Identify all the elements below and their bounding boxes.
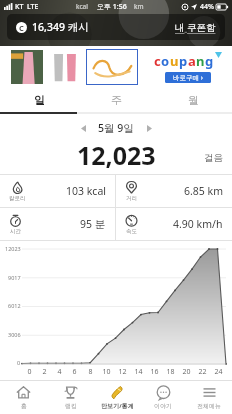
staticText: 9017 bbox=[8, 274, 21, 281]
staticText: 2 bbox=[42, 367, 47, 377]
button[interactable]: 일 bbox=[0, 88, 78, 112]
staticText: C bbox=[19, 23, 24, 33]
staticText: 14 bbox=[134, 367, 143, 377]
staticText: 내 쿠폰함 bbox=[175, 21, 216, 34]
staticText: 22 bbox=[198, 367, 207, 377]
button[interactable]: 시간 bbox=[0, 208, 115, 240]
staticText: 전체메뉴 bbox=[197, 402, 221, 410]
button[interactable]: C bbox=[7, 14, 225, 40]
button[interactable]: 칼로리 bbox=[0, 175, 115, 207]
button[interactable]: 월 bbox=[155, 88, 232, 112]
staticText: 홈 bbox=[21, 402, 27, 410]
staticText: 주 bbox=[111, 93, 122, 107]
staticText: 95 분 bbox=[80, 217, 106, 231]
staticText: 12 bbox=[118, 367, 127, 377]
staticText: 랭킹 bbox=[65, 402, 77, 410]
staticText: 거리 bbox=[126, 195, 137, 202]
staticText: 만보기/통계 bbox=[101, 402, 134, 410]
staticText: 18 bbox=[166, 367, 175, 377]
staticText: 6 bbox=[72, 367, 77, 377]
staticText: c bbox=[154, 52, 161, 70]
staticText: kcal bbox=[76, 2, 88, 11]
staticText: 20 bbox=[182, 367, 191, 377]
staticText: n bbox=[196, 52, 205, 70]
staticText: 12023 bbox=[5, 245, 21, 252]
staticText: 103 kcal bbox=[66, 184, 106, 198]
staticText: 속도 bbox=[126, 228, 137, 235]
staticText: 걸음 bbox=[204, 152, 223, 164]
button[interactable]: 랭킹 bbox=[47, 381, 94, 414]
staticText: LTE bbox=[27, 2, 39, 12]
staticText: 4.90 km/h bbox=[173, 217, 223, 231]
staticText: 5월 9일 bbox=[98, 121, 134, 135]
staticText: 칼로리 bbox=[9, 195, 26, 202]
staticText: 4 bbox=[57, 367, 62, 377]
staticText: 24 bbox=[214, 367, 223, 377]
staticText: 오후 1:56 bbox=[97, 2, 127, 12]
staticText: u bbox=[170, 52, 179, 70]
staticText: 3006 bbox=[8, 331, 21, 338]
button[interactable]: 만보기/통계 bbox=[94, 381, 140, 414]
button[interactable]: Next day bbox=[142, 121, 156, 135]
staticText: 6012 bbox=[8, 302, 21, 309]
staticText: 44% bbox=[200, 2, 214, 12]
button[interactable]: c bbox=[0, 46, 232, 88]
staticText: 0 bbox=[17, 359, 21, 366]
staticText: km bbox=[134, 2, 144, 11]
staticText: 일 bbox=[34, 93, 45, 107]
button[interactable]: 거리 bbox=[116, 175, 232, 207]
staticText: 16,349 캐시 bbox=[32, 20, 89, 34]
button[interactable]: 이야기 bbox=[140, 381, 186, 414]
staticText: 10 bbox=[102, 367, 111, 377]
staticText: 6.85 km bbox=[184, 184, 223, 198]
staticText: 월 bbox=[188, 93, 199, 107]
button[interactable]: 속도 bbox=[116, 208, 232, 240]
staticText: p bbox=[179, 52, 188, 70]
button[interactable]: 전체메뉴 bbox=[186, 381, 232, 414]
button[interactable]: 주 bbox=[78, 88, 155, 112]
staticText: KT bbox=[15, 2, 24, 12]
staticText: 16 bbox=[150, 367, 159, 377]
staticText: 12,023 bbox=[77, 138, 156, 170]
staticText: a bbox=[188, 52, 196, 70]
button[interactable]: 내 쿠폰함 bbox=[175, 21, 216, 34]
button[interactable]: 홈 bbox=[0, 381, 47, 414]
staticText: 0 bbox=[27, 367, 32, 377]
staticText: o bbox=[161, 52, 170, 70]
button[interactable]: Previous day bbox=[76, 121, 90, 135]
staticText: 바로구매 › bbox=[173, 73, 203, 82]
staticText: 시간 bbox=[10, 228, 21, 235]
staticText: 이야기 bbox=[154, 402, 172, 410]
staticText: 8 bbox=[88, 367, 93, 377]
staticText: g bbox=[205, 52, 214, 70]
